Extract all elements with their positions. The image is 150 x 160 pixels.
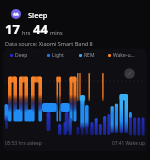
staticText: REM — [84, 52, 95, 59]
staticText: Data source: Xiaomi Smart Band 8 — [5, 40, 93, 47]
staticText: mins — [50, 29, 63, 36]
staticText: Sleep — [28, 10, 48, 20]
staticText: 17 — [5, 20, 20, 38]
staticText: 05:53 hrs asleep — [5, 140, 42, 147]
button[interactable]: Deep — [10, 52, 28, 59]
staticText: 44 — [33, 20, 48, 38]
staticText: Wake-u... — [113, 52, 135, 59]
button[interactable]: Sleep — [11, 5, 48, 20]
button[interactable]: Light — [47, 52, 64, 59]
staticText: hrs — [22, 29, 31, 36]
staticText: Deep — [15, 52, 28, 59]
staticText: 07:41 Wake up — [112, 140, 145, 147]
button[interactable] — [125, 68, 136, 79]
staticText: Light — [52, 52, 64, 59]
button[interactable]: Wake-u... — [108, 52, 135, 59]
button[interactable]: REM — [79, 52, 95, 59]
